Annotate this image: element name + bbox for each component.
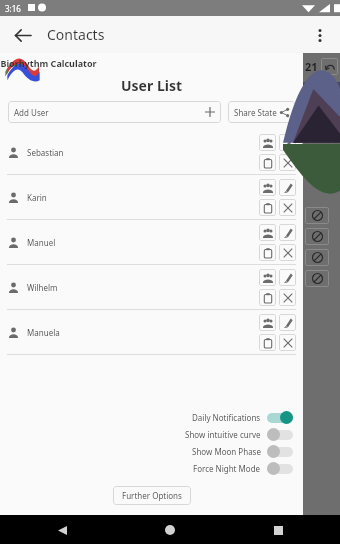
button[interactable]: Recents <box>266 518 290 542</box>
staticText: Show Moon Phase <box>192 446 261 457</box>
button[interactable]: Share with group <box>259 314 276 331</box>
button[interactable]: Back <box>6 19 38 51</box>
button[interactable]: Daily Notifications <box>0 409 293 426</box>
button[interactable]: Disabled <box>305 207 329 224</box>
button[interactable]: More options <box>305 20 335 50</box>
button[interactable]: Delete <box>279 244 296 261</box>
staticText: Biorhythm Calculator <box>0 57 97 69</box>
button[interactable]: Edit <box>279 134 296 151</box>
button[interactable]: Share State <box>228 101 295 123</box>
button[interactable]: Edit <box>279 224 296 241</box>
staticText: Manuela <box>27 327 60 338</box>
staticText: Further Options <box>122 490 182 501</box>
button[interactable]: Delete <box>279 199 296 216</box>
button[interactable]: Manuela <box>0 310 303 354</box>
staticText: Share State <box>234 107 277 118</box>
staticText: Wilhelm <box>27 282 58 293</box>
button[interactable]: Disabled <box>305 228 329 245</box>
button[interactable]: Delete <box>279 289 296 306</box>
button[interactable]: Delete <box>279 154 296 171</box>
button[interactable]: Force Night Mode <box>0 460 293 477</box>
staticText: Contacts <box>47 25 105 44</box>
button[interactable]: Share with group <box>259 224 276 241</box>
button[interactable]: Wilhelm <box>0 265 303 309</box>
staticText: Force Night Mode <box>193 463 261 474</box>
button[interactable]: Edit <box>279 179 296 196</box>
button[interactable]: Sebastian <box>0 130 303 174</box>
button[interactable]: Copy <box>259 199 276 216</box>
button[interactable]: Undo <box>321 58 338 75</box>
staticText: Manuel <box>27 237 56 248</box>
button[interactable]: Add User <box>8 101 221 123</box>
button[interactable]: Manuel <box>0 220 303 264</box>
staticText: Karin <box>27 192 47 203</box>
button[interactable]: Show intuitive curve <box>0 426 293 443</box>
button[interactable]: Copy <box>259 334 276 351</box>
button[interactable]: Share with group <box>259 134 276 151</box>
button[interactable]: Karin <box>0 175 303 219</box>
staticText: Show intuitive curve <box>185 429 261 440</box>
button[interactable]: Share with group <box>259 269 276 286</box>
staticText: Daily Notifications <box>192 412 261 423</box>
button[interactable]: Back <box>50 518 74 542</box>
button[interactable]: Disabled <box>305 270 329 287</box>
button[interactable]: Home <box>158 518 182 542</box>
button[interactable]: Edit <box>279 269 296 286</box>
button[interactable]: Further Options <box>113 486 191 505</box>
staticText: Sebastian <box>27 147 64 158</box>
button[interactable]: Disabled <box>305 249 329 266</box>
button[interactable]: Share with group <box>259 179 276 196</box>
staticText: User List <box>0 76 303 95</box>
button[interactable]: Copy <box>259 154 276 171</box>
staticText: Add User <box>14 107 49 118</box>
button[interactable]: Edit <box>279 314 296 331</box>
staticText: 21 <box>305 59 318 74</box>
button[interactable]: Show Moon Phase <box>0 443 293 460</box>
button[interactable]: Delete <box>279 334 296 351</box>
button[interactable]: Copy <box>259 289 276 306</box>
staticText: 3:16 <box>5 3 21 14</box>
button[interactable]: Copy <box>259 244 276 261</box>
